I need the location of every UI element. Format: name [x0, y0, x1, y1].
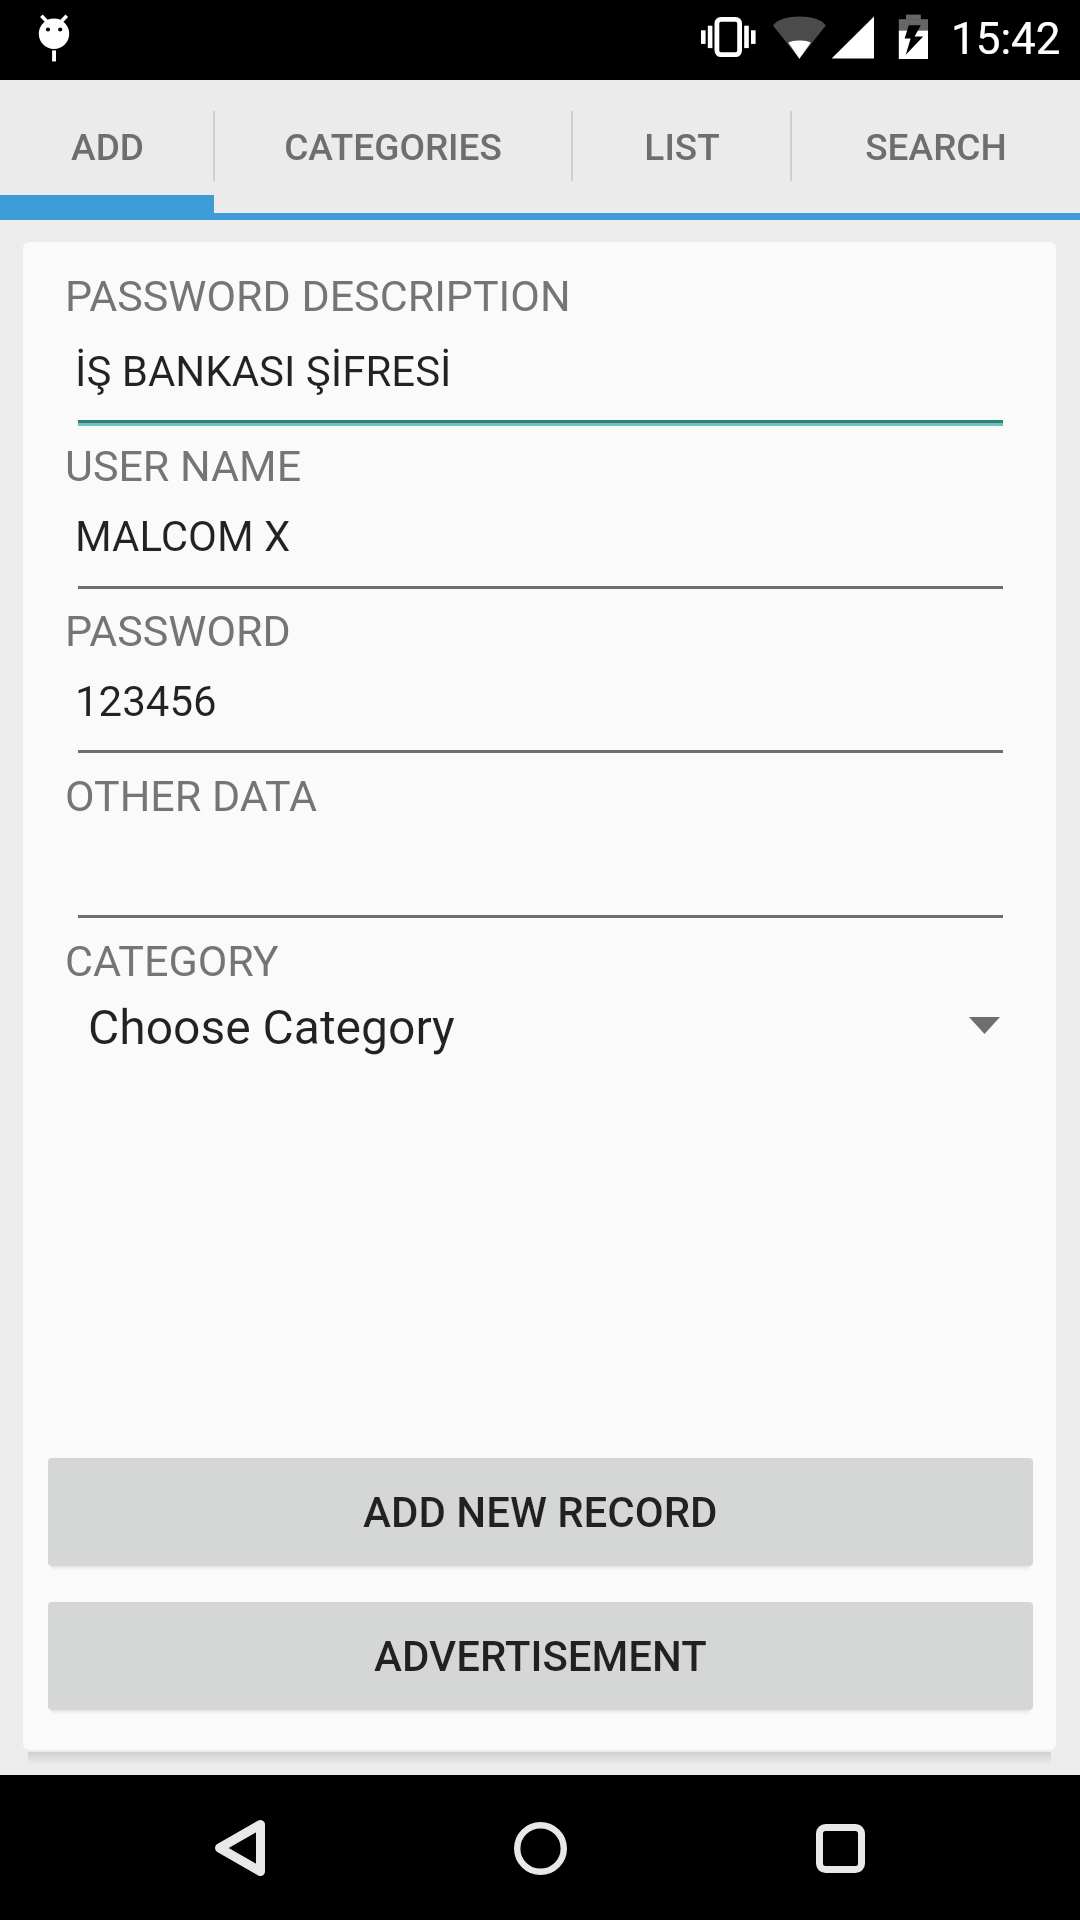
button[interactable]: Back	[180, 1788, 300, 1908]
staticText: ADD	[71, 126, 144, 169]
staticText: CATEGORIES	[284, 126, 502, 169]
button[interactable]: ADD	[0, 80, 214, 212]
staticText: CATEGORY	[65, 936, 279, 986]
button[interactable]	[78, 342, 1003, 428]
staticText: Choose Category	[88, 999, 455, 1055]
button[interactable]: Choose Category	[23, 982, 1056, 1072]
staticText: USER NAME	[65, 441, 302, 491]
staticText: ADD NEW RECORD	[363, 1488, 718, 1537]
button[interactable]: Home	[480, 1788, 600, 1908]
staticText: 15:42	[951, 13, 1061, 65]
button[interactable]	[78, 672, 1003, 758]
staticText: ADVERTISEMENT	[374, 1632, 707, 1681]
button[interactable]: SEARCH	[791, 80, 1080, 212]
staticText: PASSWORD	[65, 606, 291, 656]
staticText: OTHER DATA	[65, 771, 318, 821]
staticText: PASSWORD DESCRIPTION	[65, 271, 571, 321]
staticText: SEARCH	[865, 126, 1007, 169]
button[interactable]: ADD NEW RECORD	[48, 1458, 1033, 1566]
staticText: LIST	[644, 126, 720, 169]
button[interactable]	[78, 836, 1003, 922]
staticText: 123456	[75, 677, 217, 726]
button[interactable]: ADVERTISEMENT	[48, 1602, 1033, 1710]
button[interactable]: LIST	[572, 80, 791, 212]
staticText: İŞ BANKASI ŞİFRESİ	[75, 347, 452, 396]
button[interactable]: Recent apps	[780, 1788, 900, 1908]
button[interactable]: CATEGORIES	[214, 80, 572, 212]
staticText: MALCOM X	[75, 512, 291, 561]
button[interactable]	[78, 507, 1003, 593]
